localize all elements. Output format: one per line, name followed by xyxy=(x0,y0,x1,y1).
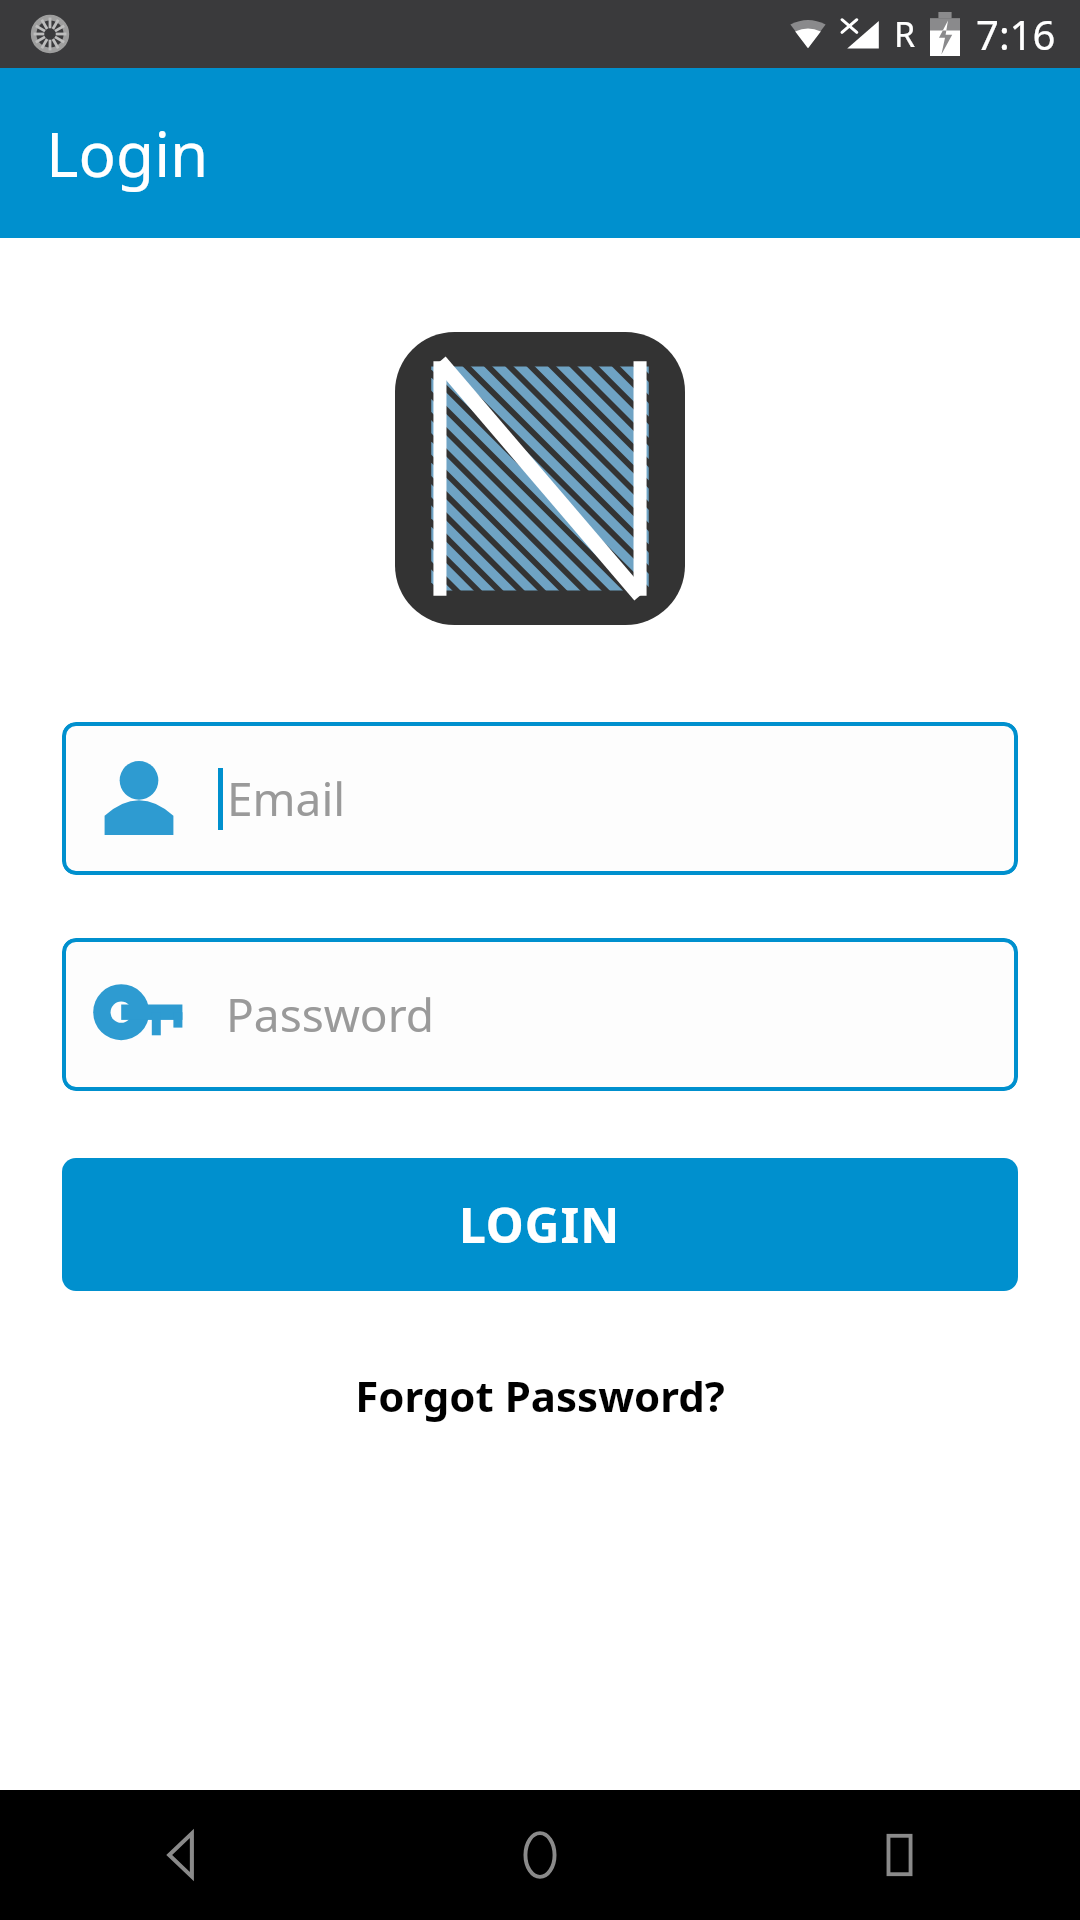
button[interactable]: LOGIN xyxy=(62,1158,1018,1291)
other: Email xyxy=(96,760,182,838)
staticText: Password xyxy=(226,983,435,1046)
button[interactable]: Email xyxy=(62,722,1018,875)
button[interactable]: Forgot Password? xyxy=(339,1359,741,1432)
staticText: 7:16 xyxy=(976,7,1056,61)
staticText: Login xyxy=(46,111,209,195)
staticText: R xyxy=(894,11,916,57)
button[interactable]: Recent apps xyxy=(720,1790,1080,1920)
staticText: LOGIN xyxy=(459,1192,621,1257)
button[interactable]: Home xyxy=(360,1790,720,1920)
button[interactable]: Password xyxy=(62,938,1018,1091)
other: Password xyxy=(96,980,186,1050)
staticText: Forgot Password? xyxy=(355,1367,725,1424)
staticText: Email xyxy=(227,767,346,830)
button[interactable]: Back xyxy=(0,1790,360,1920)
